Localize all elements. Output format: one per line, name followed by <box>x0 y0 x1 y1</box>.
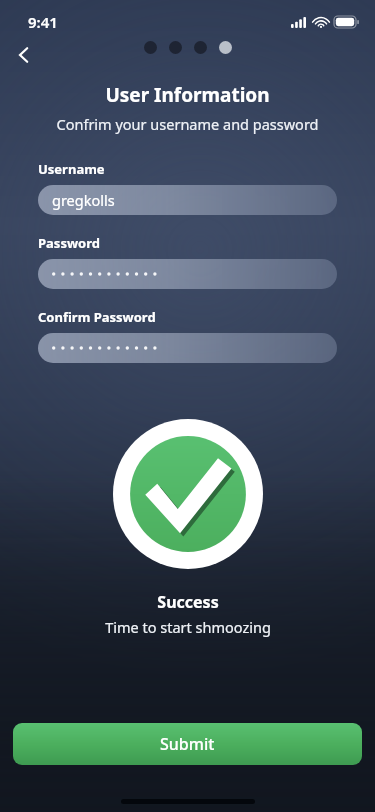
staticText: 9:41 <box>28 12 58 32</box>
staticText: User Information <box>105 82 270 108</box>
button[interactable]: Back <box>2 33 46 77</box>
button[interactable]: gregkolls <box>38 185 337 215</box>
staticText: Time to start shmoozing <box>105 617 271 637</box>
staticText: Confrim your username and password <box>56 114 319 134</box>
staticText: gregkolls <box>52 190 115 210</box>
staticText: Submit <box>160 733 215 755</box>
staticText: Confirm Password <box>38 308 156 326</box>
button[interactable]: Submit <box>13 723 362 765</box>
staticText: Success <box>157 591 219 613</box>
staticText: Password <box>38 234 100 252</box>
button[interactable] <box>38 333 337 363</box>
button[interactable] <box>38 259 337 289</box>
staticText: Username <box>38 160 105 178</box>
